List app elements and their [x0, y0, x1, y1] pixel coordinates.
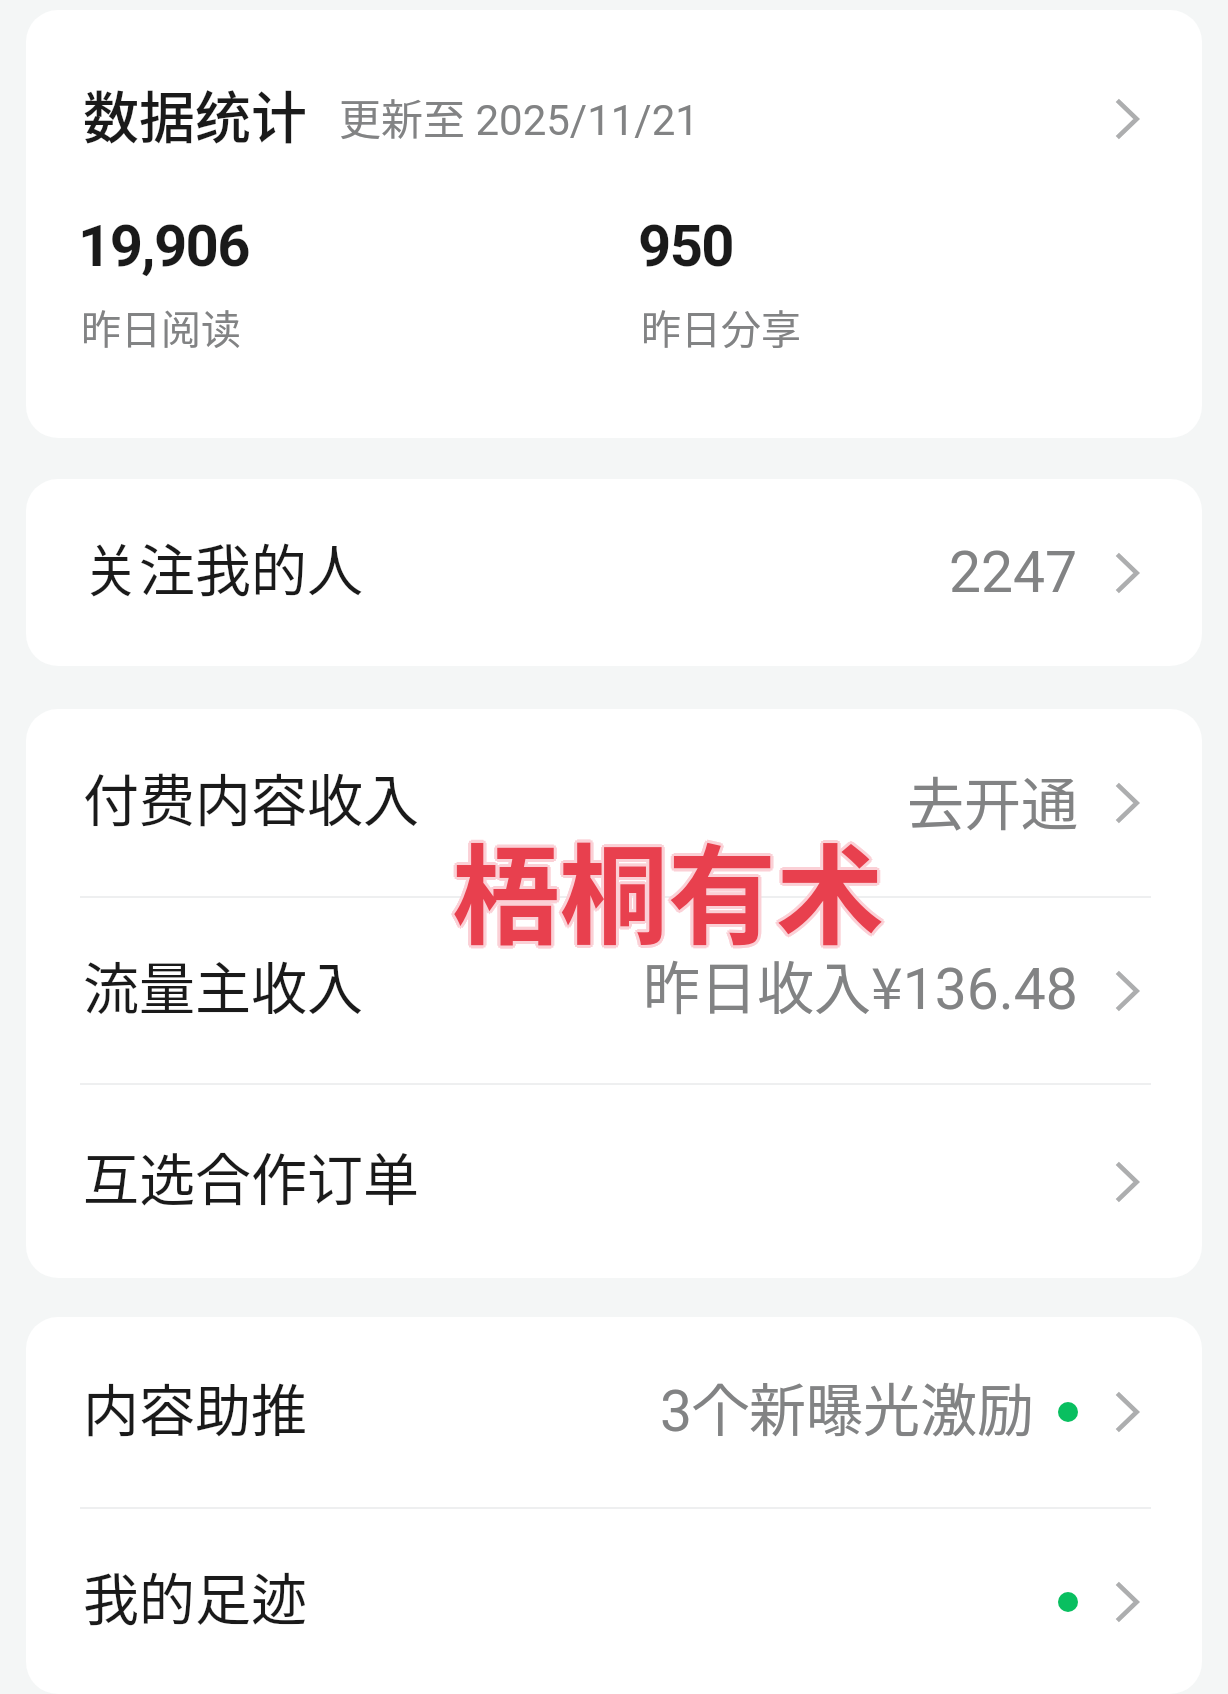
staticText: 梧桐有术 [454, 812, 887, 968]
button[interactable]: 付费内容收入 [26, 709, 1202, 896]
button[interactable]: 流量主收入 [26, 898, 1202, 1083]
staticText: 更新至 2025/11/21 [339, 86, 699, 147]
other: 互选合作订单 [1115, 1161, 1139, 1203]
other: 数据统计详情 [1115, 98, 1139, 140]
staticText: 内容助推 [83, 1366, 307, 1447]
button[interactable]: 内容助推 [26, 1317, 1202, 1507]
staticText: 3个新曝光激励 [660, 1365, 1035, 1448]
other: 我的足迹 [1115, 1581, 1139, 1623]
staticText: 流量主收入 [83, 944, 363, 1025]
staticText: 数据统计 [83, 73, 307, 154]
staticText: 昨日分享 [641, 298, 801, 356]
staticText: 关注我的人 [83, 526, 363, 607]
other: 内容助推 [1115, 1391, 1139, 1433]
staticText: 昨日收入¥136.48 [643, 943, 1078, 1026]
other: 关注我的人 [1115, 552, 1139, 594]
button[interactable]: 数据统计 [26, 10, 1202, 438]
staticText: 梧桐有术 [452, 807, 885, 963]
staticText: 梧桐有术 [452, 810, 885, 966]
staticText: 950 [638, 212, 734, 280]
staticText: 互选合作订单 [83, 1135, 419, 1216]
button[interactable]: 我的足迹 [26, 1509, 1202, 1694]
staticText: 昨日阅读 [81, 298, 241, 356]
staticText: 19,906 [78, 212, 249, 280]
button[interactable]: 互选合作订单 [26, 1085, 1202, 1278]
button[interactable]: 关注我的人 [26, 479, 1202, 666]
staticText: 去开通 [907, 759, 1078, 842]
staticText: 梧桐有术 [450, 812, 883, 968]
staticText: 梧桐有术 [452, 813, 885, 969]
staticText: 付费内容收入 [83, 756, 419, 837]
other: 付费内容收入 [1115, 782, 1139, 824]
staticText: 2247 [949, 539, 1078, 606]
staticText: 梧桐有术 [450, 808, 883, 964]
other: 流量主收入 [1115, 970, 1139, 1012]
staticText: 梧桐有术 [454, 808, 887, 964]
staticText: 梧桐有术 [455, 810, 888, 966]
staticText: 梧桐有术 [449, 810, 882, 966]
staticText: 我的足迹 [83, 1555, 307, 1636]
